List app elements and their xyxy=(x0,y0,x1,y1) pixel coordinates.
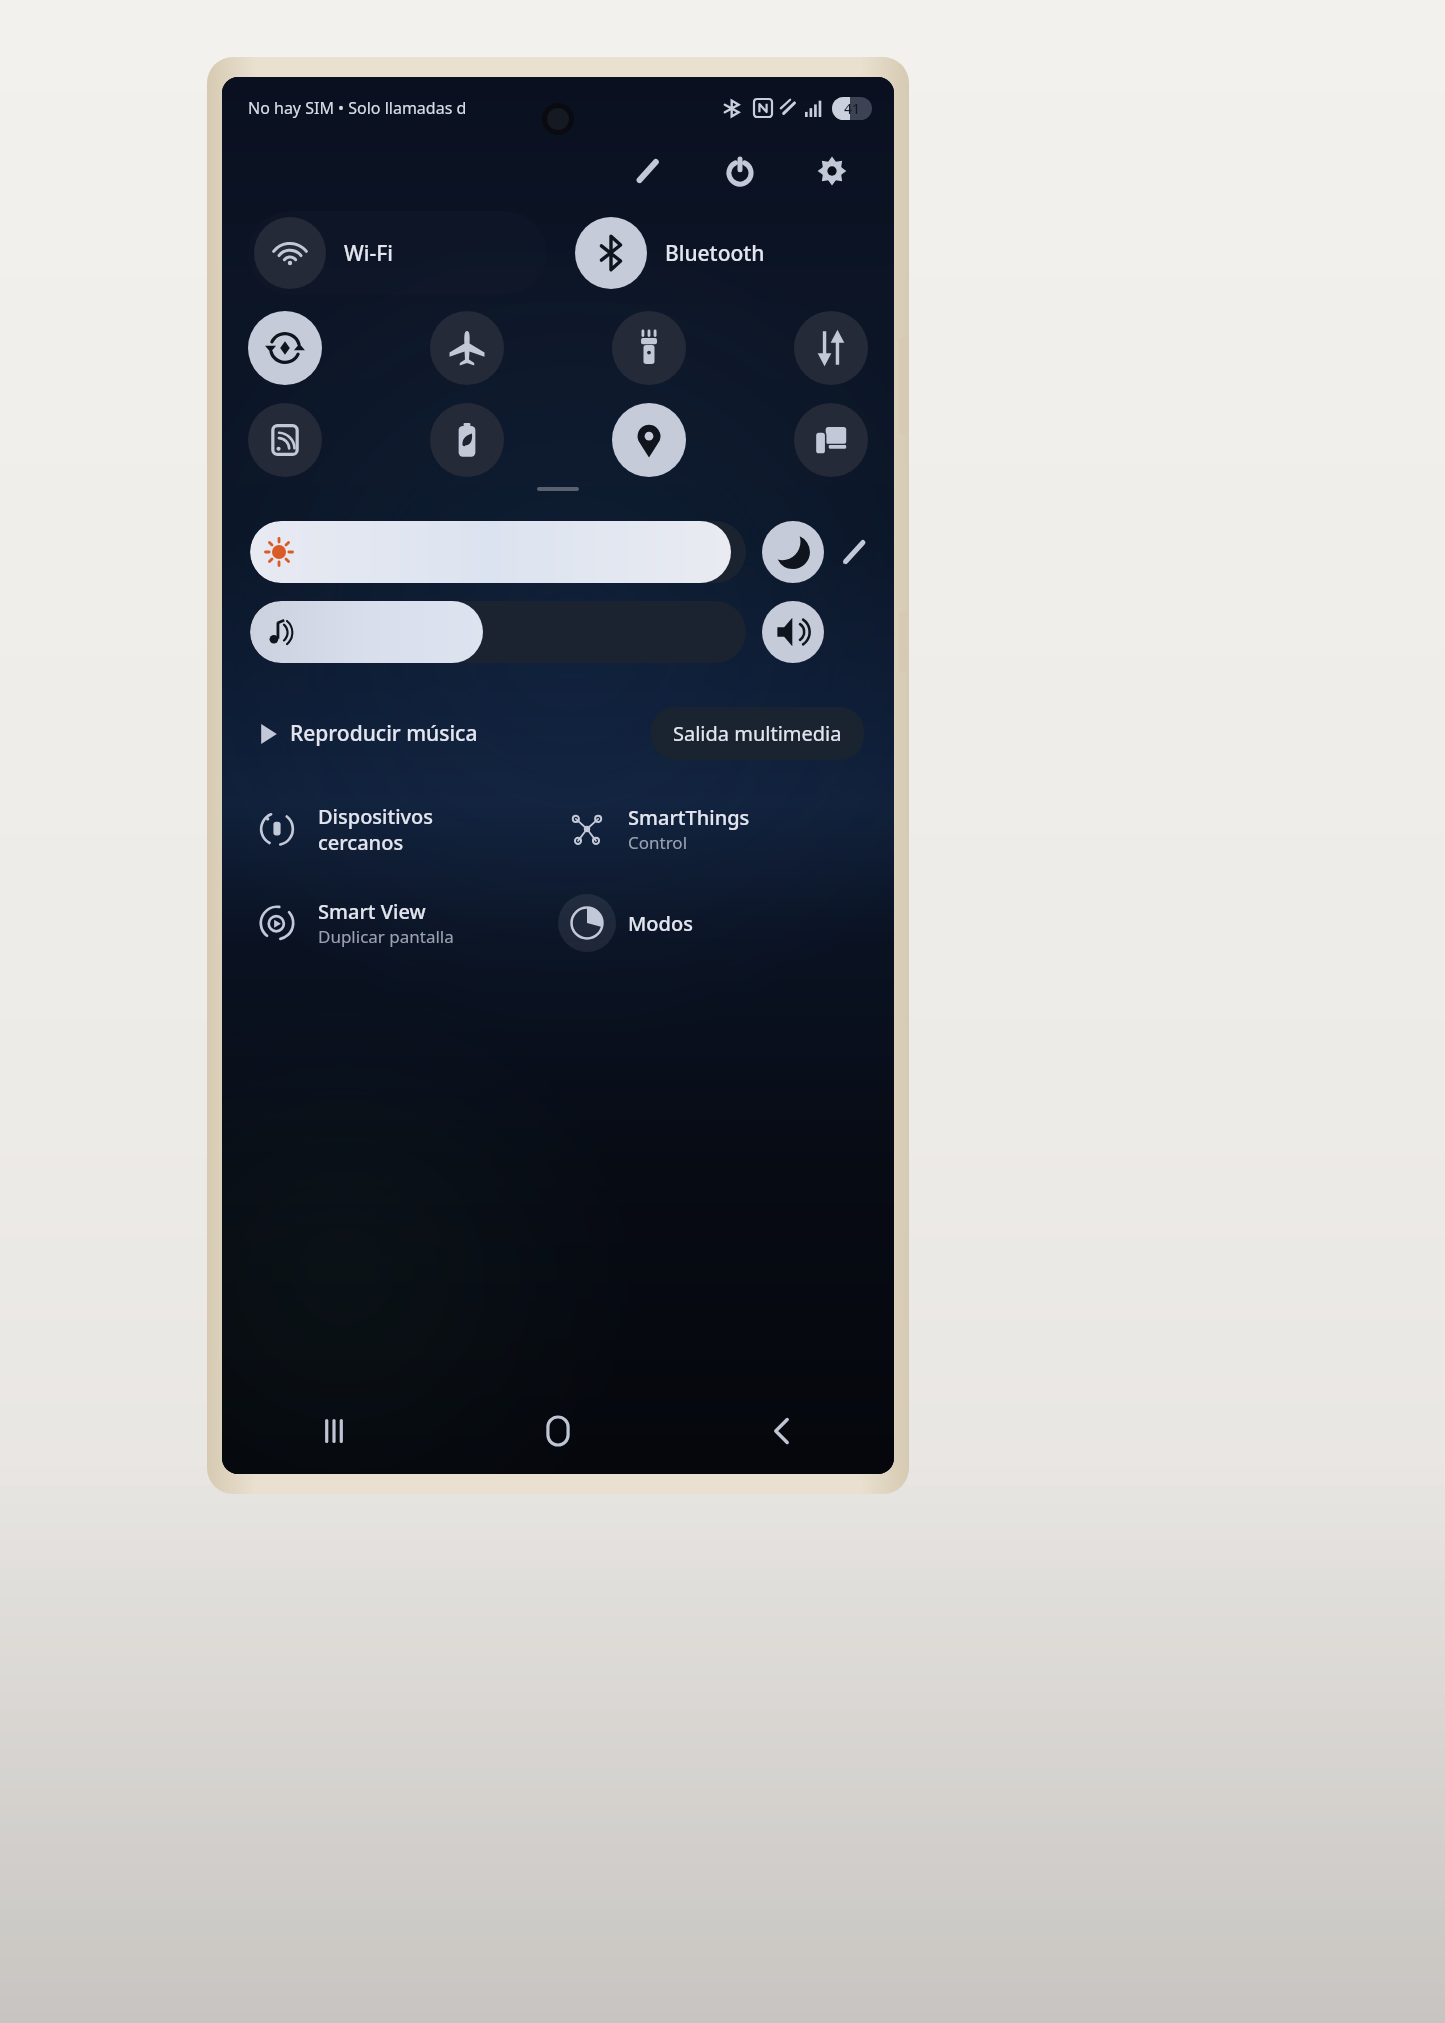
button[interactable]: Modos xyxy=(558,888,868,958)
button[interactable]: Power saving xyxy=(430,403,504,477)
button[interactable]: Power xyxy=(716,147,764,195)
button[interactable] xyxy=(250,521,746,583)
button[interactable]: Cast xyxy=(248,403,322,477)
staticText: No hay SIM • Solo llamadas d xyxy=(248,97,467,119)
button[interactable]: Dark mode xyxy=(762,521,824,583)
staticText: Reproducir música xyxy=(290,719,478,748)
button[interactable]: Bluetooth xyxy=(569,211,868,295)
button[interactable]: Wi-Fi xyxy=(248,211,547,295)
button[interactable] xyxy=(250,601,746,663)
button[interactable]: SmartThings xyxy=(558,794,868,864)
staticText: SmartThings xyxy=(628,804,750,831)
button[interactable]: Dispositivos cercanos xyxy=(248,794,558,864)
button[interactable]: Home xyxy=(446,1388,670,1474)
button[interactable]: Salida multimedia xyxy=(651,707,864,760)
button[interactable]: Auto rotate xyxy=(248,311,322,385)
staticText: Wi-Fi xyxy=(344,239,393,268)
button[interactable]: Data usage xyxy=(794,311,868,385)
staticText: Modos xyxy=(628,910,693,937)
staticText: 41 xyxy=(844,99,861,118)
button[interactable]: Edit xyxy=(624,147,672,195)
button[interactable]: Settings xyxy=(808,147,856,195)
button[interactable]: Link to Windows xyxy=(794,403,868,477)
staticText: Control xyxy=(628,831,688,854)
button[interactable]: Edit brightness xyxy=(832,530,876,574)
button[interactable]: Location xyxy=(612,403,686,477)
staticText: Duplicar pantalla xyxy=(318,925,454,948)
button[interactable]: Reproducir música xyxy=(252,711,484,756)
button[interactable]: Airplane mode xyxy=(430,311,504,385)
button[interactable]: Flashlight xyxy=(612,311,686,385)
staticText: Dispositivos cercanos xyxy=(318,803,434,856)
staticText: Bluetooth xyxy=(665,239,765,268)
staticText: Smart View xyxy=(318,898,426,925)
staticText: Salida multimedia xyxy=(673,720,842,747)
button[interactable]: Smart View xyxy=(248,888,558,958)
button[interactable]: Sound xyxy=(762,601,824,663)
button[interactable]: Recents xyxy=(222,1388,446,1474)
button[interactable]: Back xyxy=(670,1388,894,1474)
